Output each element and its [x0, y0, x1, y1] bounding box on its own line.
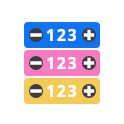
button[interactable]: Increase — [82, 84, 96, 98]
button[interactable]: Increase — [82, 56, 96, 70]
staticText: 123 — [46, 24, 79, 46]
button[interactable]: Decrease — [29, 56, 43, 70]
button[interactable]: Decrease — [29, 84, 43, 98]
staticText: 123 — [46, 52, 79, 74]
button[interactable]: Decrease — [29, 28, 43, 42]
staticText: 123 — [46, 80, 79, 102]
button[interactable]: Increase — [82, 28, 96, 42]
